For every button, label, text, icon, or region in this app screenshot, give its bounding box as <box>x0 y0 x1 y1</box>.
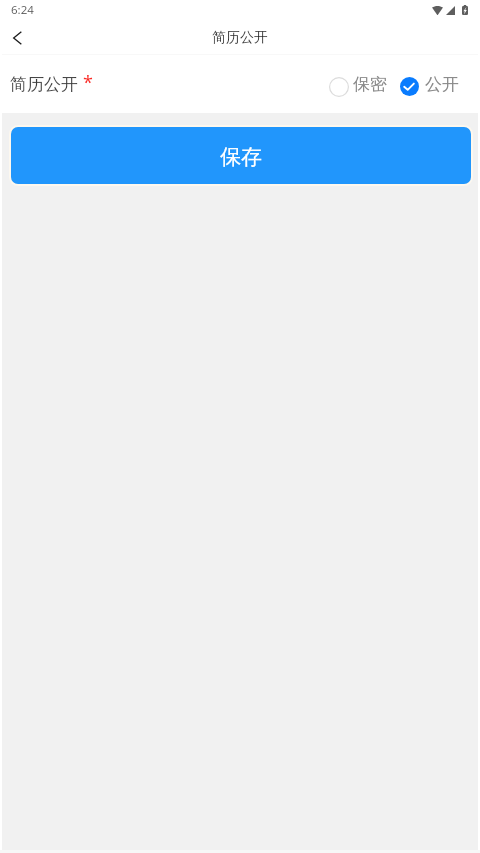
staticText: * <box>83 70 93 95</box>
button[interactable]: 保存 <box>9 125 473 186</box>
staticText: 保密 <box>353 74 387 95</box>
staticText: 保存 <box>220 144 262 170</box>
staticText: 简历公开 <box>10 74 78 95</box>
staticText: 简历公开 <box>212 29 268 47</box>
button[interactable]: 保密 <box>329 74 387 95</box>
staticText: 公开 <box>425 74 459 95</box>
staticText: 6:24 <box>11 2 34 18</box>
button[interactable]: Back <box>0 21 34 54</box>
button[interactable]: 公开 <box>400 74 459 95</box>
